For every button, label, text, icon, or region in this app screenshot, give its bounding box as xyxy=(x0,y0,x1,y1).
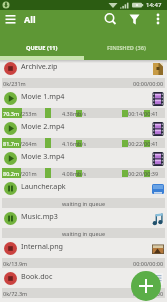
staticText: 00:22/00:41 xyxy=(128,140,159,147)
staticText: 4.16mb/s xyxy=(62,140,87,147)
button[interactable]: Movie 3.mp4 xyxy=(0,150,167,180)
staticText: 4.08mb/s xyxy=(62,170,87,177)
staticText: /264m xyxy=(20,140,37,147)
staticText: All xyxy=(24,13,36,25)
button[interactable]: Movie 2.mp4 xyxy=(0,120,167,150)
staticText: 0k/72.3m xyxy=(3,290,28,297)
button[interactable]: Movie 1.mp4 xyxy=(0,90,167,120)
staticText: 70.3m xyxy=(3,110,20,117)
button[interactable] xyxy=(100,12,119,28)
staticText: Launcher.apk xyxy=(21,181,66,191)
staticText: 4.38mb/s xyxy=(62,110,87,117)
staticText: 00:00/00:00 xyxy=(133,290,164,297)
staticText: /201m xyxy=(20,170,37,177)
button[interactable] xyxy=(150,12,166,28)
staticText: FINISHED (36) xyxy=(107,44,146,52)
staticText: 81.7m xyxy=(3,140,20,147)
staticText: Movie 3.mp4 xyxy=(21,151,65,161)
staticText: /253m xyxy=(20,110,37,117)
staticText: 80.2m xyxy=(3,170,20,177)
button[interactable] xyxy=(131,271,161,301)
staticText: QUEUE (11) xyxy=(26,44,58,52)
staticText: 00:00/00:00 xyxy=(133,260,164,267)
staticText: waiting in queue xyxy=(62,230,106,237)
button[interactable]: QUEUE (11) xyxy=(0,30,84,60)
button[interactable] xyxy=(125,12,144,28)
button[interactable]: Launcher.apk xyxy=(0,180,167,210)
button[interactable]: Archive.zip xyxy=(0,60,167,90)
staticText: Music.mp3 xyxy=(21,211,58,221)
button[interactable] xyxy=(2,12,20,28)
staticText: Book.doc xyxy=(21,271,53,281)
button[interactable]: FINISHED (36) xyxy=(84,30,167,60)
button[interactable]: Music.mp3 xyxy=(0,210,167,240)
staticText: 00:00/00:00 xyxy=(133,80,164,87)
staticText: Movie 2.mp4 xyxy=(21,121,65,131)
staticText: 0k/231m xyxy=(3,80,26,87)
staticText: 14:47 xyxy=(146,1,162,9)
staticText: waiting in queue xyxy=(62,200,106,207)
staticText: 00:14/00:41 xyxy=(128,110,159,117)
button[interactable]: Book.doc xyxy=(0,270,167,300)
staticText: 00:20/00:39 xyxy=(128,170,159,177)
button[interactable]: Internal.png xyxy=(0,240,167,270)
staticText: Movie 1.mp4 xyxy=(21,91,65,101)
staticText: 0k/13.9m xyxy=(3,260,28,267)
staticText: Archive.zip xyxy=(21,61,58,71)
staticText: Internal.png xyxy=(21,241,64,251)
